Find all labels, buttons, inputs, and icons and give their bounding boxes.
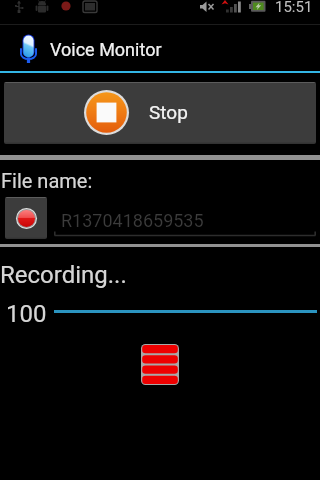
staticText: R1370418659535 <box>61 210 204 231</box>
staticText: 100 <box>6 300 47 328</box>
button[interactable]: Record <box>5 197 47 239</box>
staticText: Voice Monitor <box>50 39 162 60</box>
staticText: Recording... <box>0 261 127 289</box>
button[interactable]: Stop <box>4 82 316 144</box>
staticText: 15:51 <box>275 0 313 16</box>
staticText: File name: <box>1 169 93 192</box>
staticText: Stop <box>149 101 188 123</box>
